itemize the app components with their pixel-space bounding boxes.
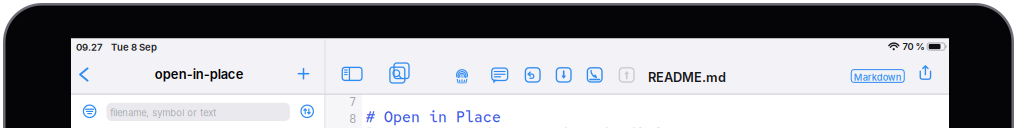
button[interactable]: Touch ID [449, 62, 475, 88]
button[interactable]: Share [912, 60, 938, 86]
button[interactable]: Sort [296, 100, 318, 122]
button[interactable]: Filter [79, 100, 101, 122]
staticText: README.md [648, 69, 726, 85]
button[interactable]: Toggle Sidebar [337, 61, 367, 87]
staticText: open-in-place [155, 66, 244, 82]
button[interactable]: Push [615, 63, 639, 87]
staticText: 70 % [902, 41, 924, 52]
staticText: 8 [349, 112, 356, 126]
staticText: Tue 8 Sep [111, 41, 157, 53]
button[interactable]: filename, symbol or text [106, 103, 290, 121]
button[interactable]: Add [289, 60, 317, 88]
button[interactable]: Comments [487, 63, 513, 89]
button[interactable]: 09.27 [76, 41, 103, 53]
button[interactable]: Markdown [851, 70, 904, 82]
staticText: # Open in Place [366, 107, 501, 127]
button[interactable]: Search Files [384, 60, 414, 86]
button[interactable]: Commit [583, 63, 607, 87]
button[interactable]: Back [70, 59, 98, 89]
staticText: Markdown [854, 72, 902, 83]
staticText: filename, symbol or text [110, 107, 216, 118]
staticText: 7 [349, 95, 356, 109]
button[interactable]: Pull [552, 63, 576, 87]
staticText: 09.27 [76, 41, 103, 53]
staticText: Demonstrates document-based editing [366, 123, 681, 128]
button[interactable]: Undo [521, 63, 545, 87]
